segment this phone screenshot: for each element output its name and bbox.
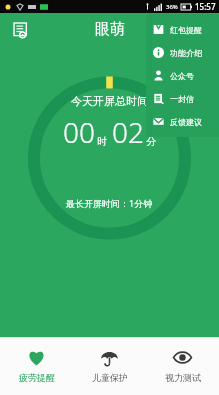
button[interactable]: Report [7,17,33,43]
button[interactable]: 疲劳提醒 [0,338,73,395]
staticText: 最长开屏时间：1分钟 [66,197,153,209]
staticText: 15:57 [195,1,216,12]
staticText: 分 [146,135,156,148]
button[interactable]: More options [187,17,213,43]
staticText: 反馈建议 [170,117,202,127]
staticText: 儿童保护 [92,372,128,383]
staticText: 红包提醒 [170,25,202,35]
staticText: 公众号 [170,71,194,81]
staticText: 眼萌 [95,20,125,39]
staticText: 时 [97,135,107,148]
staticText: 疲劳提醒 [19,372,55,383]
staticText: 一封信 [170,94,194,104]
staticText: 00 [63,113,95,151]
button[interactable]: 红包提醒 [146,18,219,41]
staticText: 36% [166,3,178,11]
staticText: 02 [112,113,144,151]
button[interactable]: 公众号 [146,64,219,87]
button[interactable]: 儿童保护 [73,338,146,395]
button[interactable]: 一封信 [146,87,219,110]
staticText: 功能介绍 [170,48,202,58]
button[interactable]: 反馈建议 [146,110,219,133]
staticText: 视力测试 [165,372,201,383]
button[interactable]: 视力测试 [146,338,219,395]
button[interactable]: 功能介绍 [146,41,219,64]
staticText: 今天开屏总时间 [71,94,148,108]
